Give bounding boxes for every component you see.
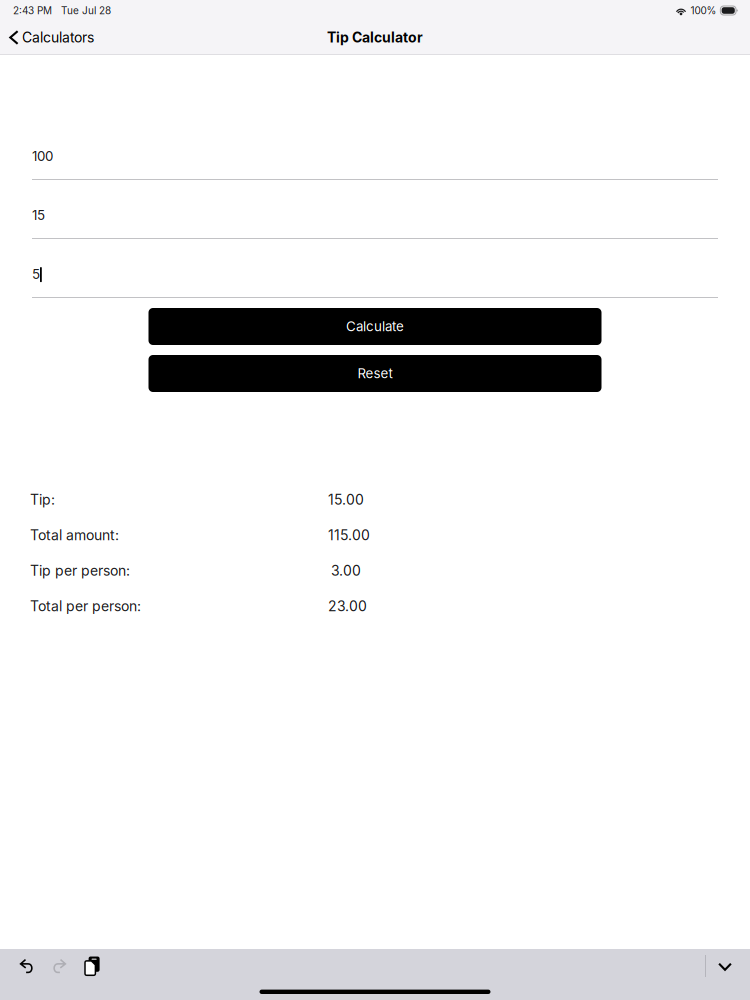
staticText: Tip: [30,491,55,508]
staticText: Calculators [22,29,94,46]
button[interactable]: Paste [76,949,109,983]
staticText: 115.00 [328,527,370,544]
staticText: 100% [690,4,716,17]
button[interactable]: Hide keyboard [706,949,750,983]
staticText: Tue Jul 28 [61,4,111,17]
button[interactable]: Reset [148,355,601,392]
staticText: Total per person: [30,598,141,615]
staticText: 100 [32,148,53,164]
staticText: Total amount: [30,527,119,544]
staticText: Tip per person: [30,562,130,579]
staticText: Reset [357,365,392,381]
staticText: 5 [32,266,40,282]
staticText: Tip Calculator [327,29,423,46]
staticText: 2:43 PM [13,4,52,17]
button[interactable]: Undo [10,949,43,983]
staticText: 23.00 [328,598,367,615]
staticText: 3.00 [331,562,361,579]
button[interactable]: Redo [43,949,76,983]
button[interactable]: Calculate [148,308,601,345]
staticText: 15.00 [328,491,364,508]
staticText: Calculate [346,318,404,334]
staticText: 15 [32,207,45,223]
button[interactable]: Calculators [0,21,104,53]
